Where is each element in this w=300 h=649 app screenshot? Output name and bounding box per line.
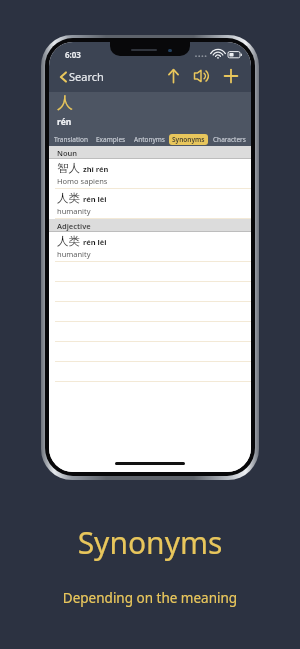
staticText: 智人	[57, 161, 80, 175]
button[interactable]: 人类	[49, 189, 251, 219]
button[interactable]: Antonyms	[131, 134, 168, 145]
staticText: 人类	[57, 191, 80, 205]
staticText: Noun	[57, 148, 78, 158]
staticText: rén lèi	[83, 237, 107, 247]
button[interactable]: Examples	[93, 134, 129, 145]
staticText: Depending on the meaning	[0, 589, 300, 607]
staticText: Translation	[54, 135, 88, 144]
button[interactable]: Scroll to top	[163, 64, 184, 88]
staticText: Adjective	[57, 221, 91, 231]
staticText: Homo sapiens	[57, 176, 108, 186]
staticText: zhì rén	[83, 164, 109, 174]
staticText: humanity	[57, 249, 91, 259]
button[interactable]: Search	[57, 67, 107, 86]
button[interactable]: Add	[219, 64, 243, 88]
button[interactable]: 智人	[49, 159, 251, 189]
button[interactable]: Play pronunciation	[189, 64, 214, 88]
button[interactable]: Synonyms	[169, 134, 208, 145]
staticText: 6:03	[65, 49, 81, 60]
staticText: Synonyms	[0, 522, 300, 563]
staticText: Antonyms	[134, 135, 165, 144]
staticText: humanity	[57, 206, 91, 216]
button[interactable]: Characters	[210, 134, 249, 145]
staticText: rén	[57, 116, 72, 128]
staticText: Examples	[96, 135, 126, 144]
button[interactable]: 人类	[49, 232, 251, 262]
staticText: Synonyms	[172, 135, 205, 144]
staticText: rén lèi	[83, 194, 107, 204]
staticText: 人类	[57, 234, 80, 248]
button[interactable]: Translation	[51, 134, 91, 145]
staticText: 人	[57, 93, 73, 113]
staticText: Search	[69, 69, 104, 84]
staticText: Characters	[213, 135, 246, 144]
